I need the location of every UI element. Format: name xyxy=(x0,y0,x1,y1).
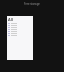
staticText: All xyxy=(8,17,13,22)
button[interactable] xyxy=(7,26,33,28)
button[interactable] xyxy=(7,34,33,36)
button[interactable] xyxy=(7,22,33,24)
button[interactable] xyxy=(7,24,33,26)
staticText: Free storage xyxy=(24,2,40,6)
button[interactable] xyxy=(7,28,33,30)
button[interactable] xyxy=(7,32,33,34)
button[interactable] xyxy=(7,30,33,32)
